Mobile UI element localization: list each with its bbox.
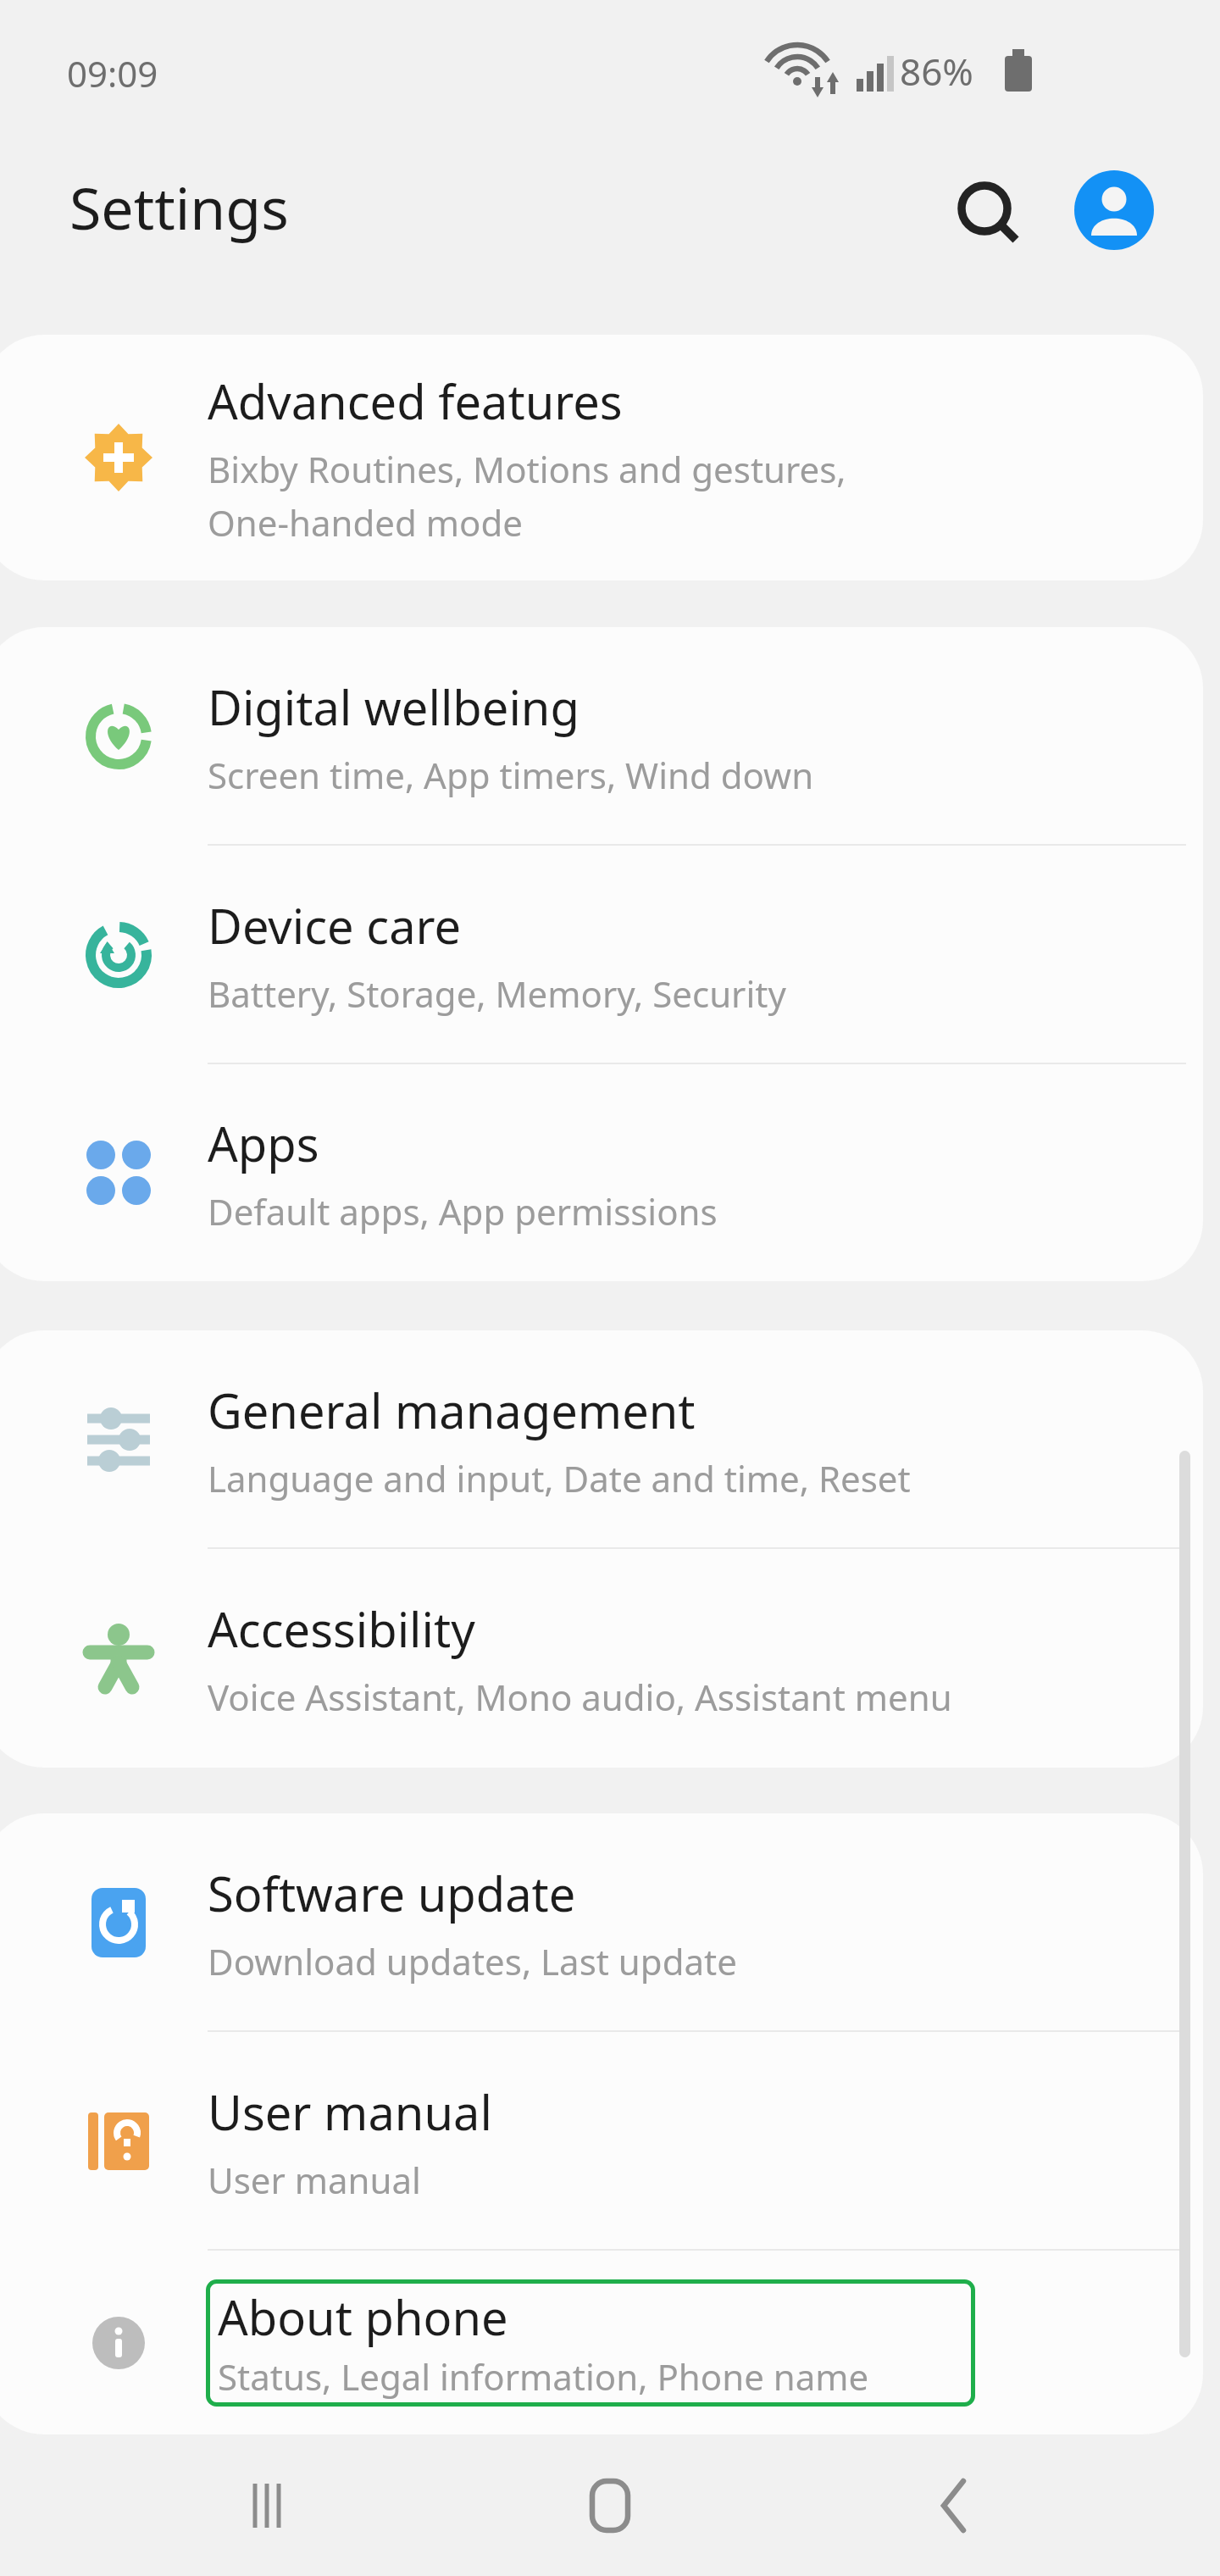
button[interactable]: Back — [898, 2451, 1008, 2561]
staticText: Download updates, Last update — [208, 1937, 737, 1985]
button[interactable]: Software update — [0, 1813, 1220, 2032]
staticText: General management — [208, 1378, 696, 1442]
staticText: Status, Legal information, Phone name — [218, 2352, 869, 2401]
staticText: About phone — [218, 2285, 508, 2349]
button[interactable]: Advanced features — [0, 335, 1220, 580]
staticText: Settings — [69, 168, 289, 247]
button[interactable]: Digital wellbeing — [0, 627, 1220, 846]
staticText: Advanced features — [208, 369, 623, 433]
button[interactable]: Home — [555, 2451, 665, 2561]
button[interactable]: Recents — [212, 2451, 322, 2561]
staticText: Language and input, Date and time, Reset — [208, 1454, 911, 1502]
staticText: User manual — [208, 2079, 492, 2144]
button[interactable]: About phone — [0, 2251, 1220, 2434]
staticText: Battery, Storage, Memory, Security — [208, 969, 786, 1018]
staticText: Software update — [208, 1861, 576, 1925]
button[interactable]: Accessibility — [0, 1549, 1220, 1768]
staticText: Default apps, App permissions — [208, 1187, 718, 1235]
button[interactable]: Apps — [0, 1064, 1220, 1281]
staticText: 86% — [900, 46, 973, 97]
staticText: Device care — [208, 893, 462, 958]
staticText: Apps — [208, 1111, 319, 1175]
staticText: Screen time, App timers, Wind down — [208, 751, 814, 799]
button[interactable]: User manual — [0, 2032, 1220, 2251]
staticText: Digital wellbeing — [208, 675, 579, 739]
staticText: Accessibility — [208, 1596, 475, 1661]
button[interactable]: Search — [934, 159, 1040, 264]
staticText: Bixby Routines, Motions and gestures, — [208, 445, 846, 493]
staticText: One-handed mode — [208, 498, 523, 547]
staticText: User manual — [208, 2156, 421, 2204]
staticText: 09:09 — [67, 49, 158, 97]
button[interactable]: Device care — [0, 846, 1220, 1064]
button[interactable]: General management — [0, 1330, 1220, 1549]
staticText: Voice Assistant, Mono audio, Assistant m… — [208, 1673, 952, 1721]
button[interactable]: Account — [1062, 158, 1167, 263]
